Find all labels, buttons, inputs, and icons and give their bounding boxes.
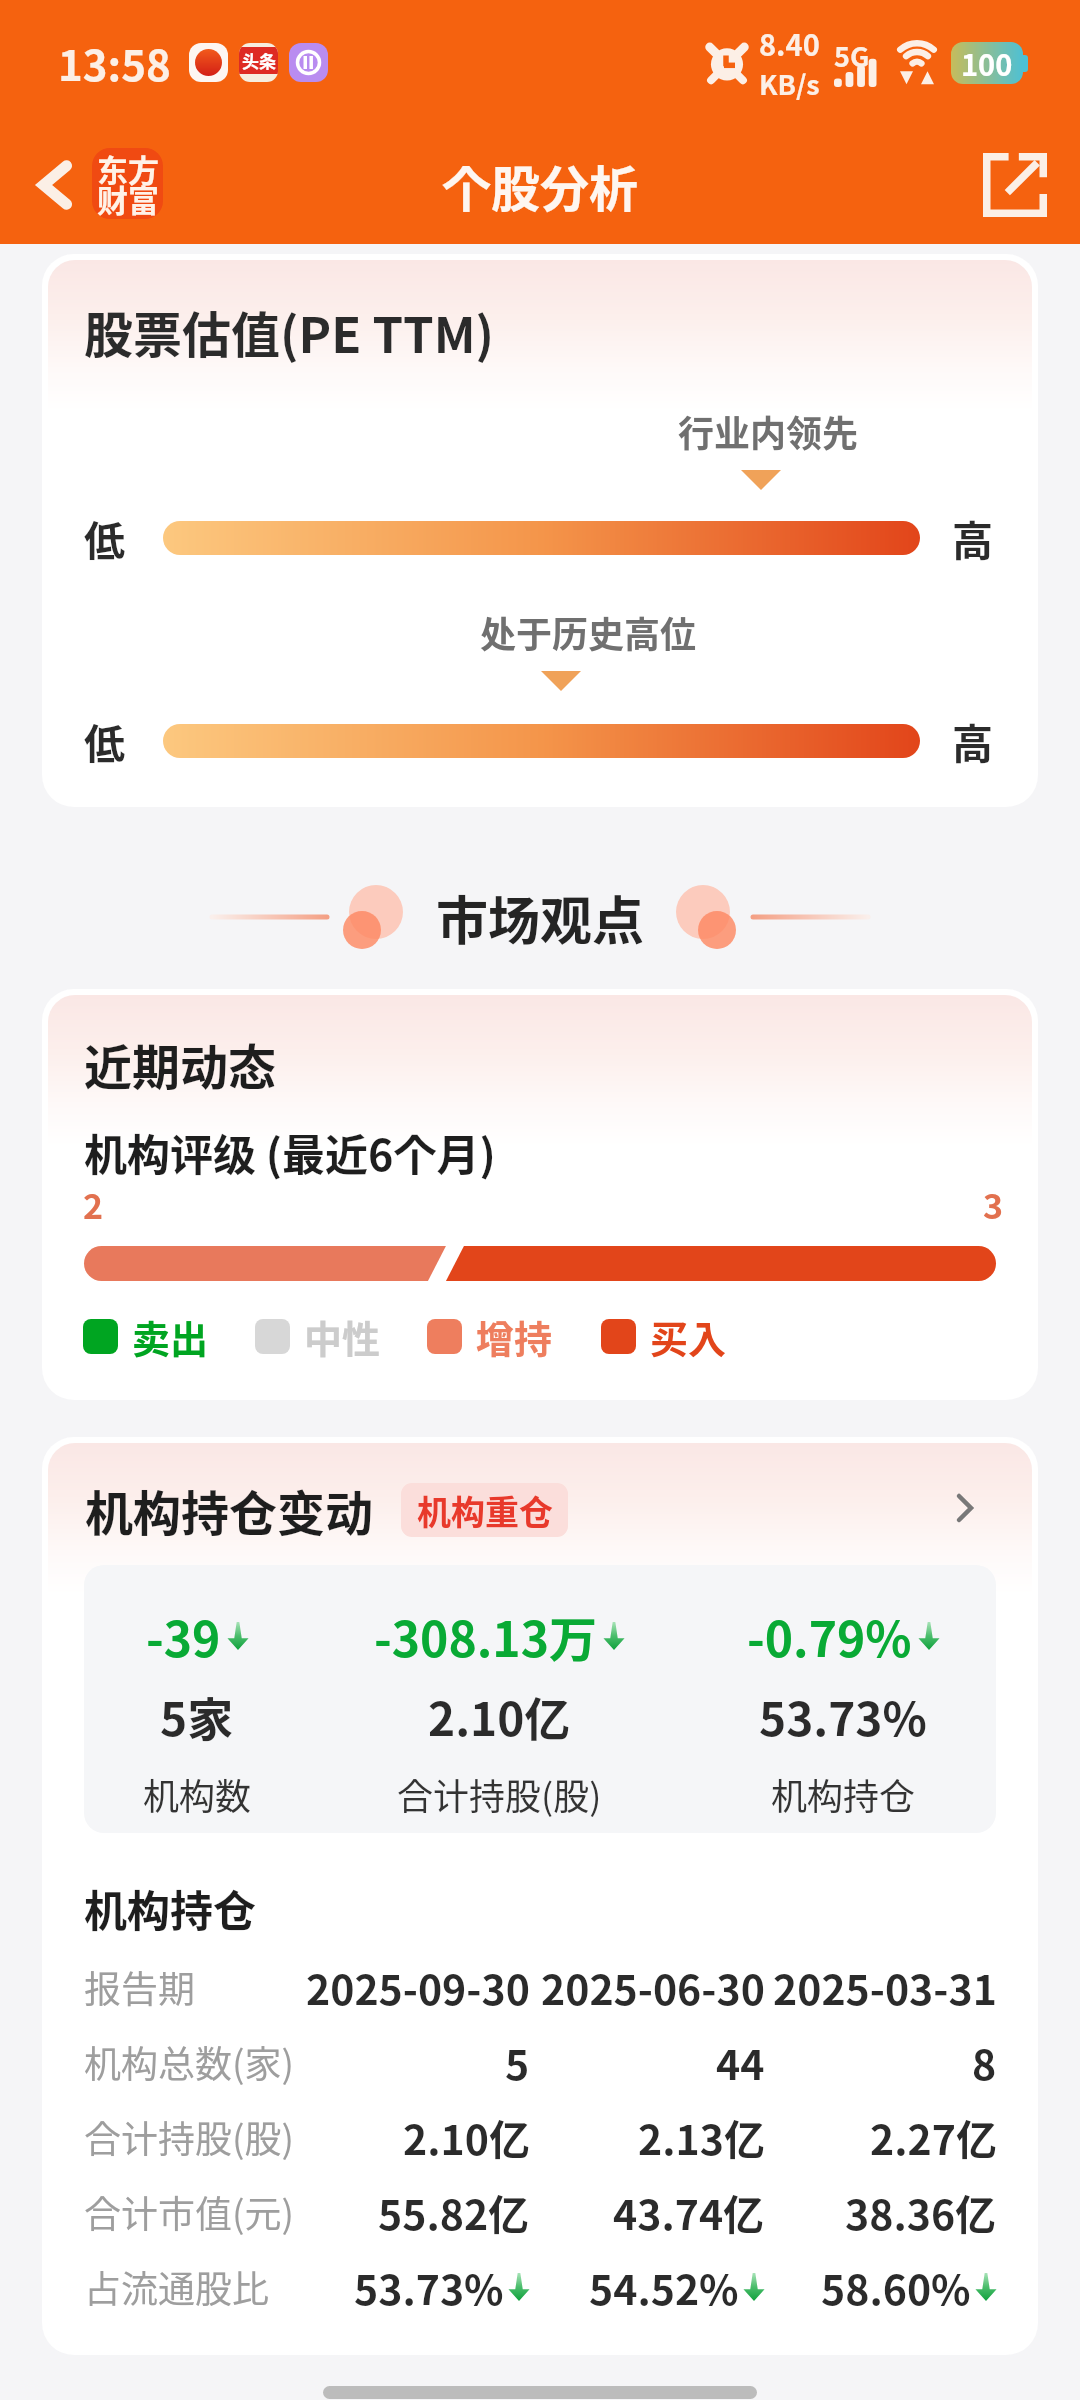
staticText: 机构持仓 — [84, 1877, 256, 1939]
staticText: 股票估值(PE TTM) — [84, 296, 495, 367]
staticText: 报告期 — [84, 1960, 195, 2014]
staticText: 8.40 — [759, 22, 820, 64]
staticText: 机构数 — [143, 1768, 252, 1820]
staticText: 机构持仓 — [771, 1768, 916, 1820]
staticText: 58.60% — [821, 2257, 971, 2316]
staticText: 55.82亿 — [378, 2182, 530, 2241]
staticText: 机构重仓 — [417, 1486, 553, 1535]
staticText: 54.52% — [589, 2257, 739, 2316]
staticText: -39 — [146, 1601, 221, 1671]
staticText: 头条 — [242, 48, 276, 73]
staticText: 44 — [716, 2032, 765, 2091]
staticText: 东方 — [97, 148, 159, 191]
staticText: 53.73% — [759, 1683, 927, 1750]
staticText: 2025-09-30 — [306, 1957, 530, 2016]
staticText: 2025-06-30 — [541, 1957, 765, 2016]
staticText: 增持 — [476, 1309, 553, 1364]
staticText: 100 — [961, 42, 1013, 84]
staticText: -308.13万 — [374, 1601, 597, 1671]
staticText: 个股分析 — [442, 150, 639, 221]
staticText: 机构总数(家) — [84, 2035, 295, 2089]
staticText: -0.79% — [747, 1601, 912, 1671]
staticText: 近期动态 — [84, 1029, 277, 1099]
staticText: 2.13亿 — [638, 2107, 765, 2166]
staticText: 合计市值(元) — [84, 2185, 295, 2239]
button[interactable]: 机构持仓变动 — [85, 1475, 568, 1545]
button[interactable]: 增持 — [427, 1303, 553, 1370]
staticText: 中性 — [304, 1309, 381, 1364]
staticText: 2.27亿 — [870, 2107, 997, 2166]
staticText: 占流通股比 — [84, 2260, 269, 2314]
staticText: 机构评级 (最近6个月) — [84, 1121, 496, 1183]
button[interactable]: More — [934, 1477, 996, 1539]
button[interactable]: 买入 — [601, 1303, 727, 1370]
staticText: 市场观点 — [436, 880, 645, 955]
staticText: 行业内领先 — [678, 405, 859, 457]
staticText: 13:58 — [58, 32, 171, 93]
staticText: 2.10亿 — [403, 2107, 530, 2166]
staticText: 处于历史高位 — [480, 606, 697, 658]
staticText: 卖出 — [132, 1309, 209, 1364]
button[interactable]: 卖出 — [83, 1303, 209, 1370]
staticText: 合计持股(股) — [397, 1768, 602, 1820]
staticText: KB/s — [759, 64, 820, 103]
staticText: 8 — [972, 2032, 997, 2091]
staticText: 5家 — [160, 1683, 234, 1750]
staticText: 高 — [952, 508, 993, 567]
staticText: 2.10亿 — [428, 1683, 571, 1750]
staticText: 5 — [505, 2032, 530, 2091]
staticText: 43.74亿 — [613, 2182, 765, 2241]
button[interactable]: Back — [18, 147, 94, 223]
staticText: 财富 — [97, 176, 159, 219]
staticText: 合计持股(股) — [84, 2110, 295, 2164]
staticText: 机构持仓变动 — [85, 1475, 374, 1545]
staticText: 2025-03-31 — [773, 1957, 997, 2016]
staticText: 高 — [952, 711, 993, 770]
button[interactable]: Share — [970, 140, 1060, 230]
staticText: 53.73% — [354, 2257, 504, 2316]
staticText: 买入 — [650, 1309, 727, 1364]
staticText: 低 — [84, 711, 125, 770]
staticText: 低 — [84, 508, 125, 567]
staticText: 3 — [963, 1180, 1003, 1229]
button[interactable]: 中性 — [255, 1303, 381, 1370]
staticText: 5G — [834, 36, 870, 75]
staticText: 2 — [83, 1180, 104, 1229]
staticText: 38.36亿 — [845, 2182, 997, 2241]
